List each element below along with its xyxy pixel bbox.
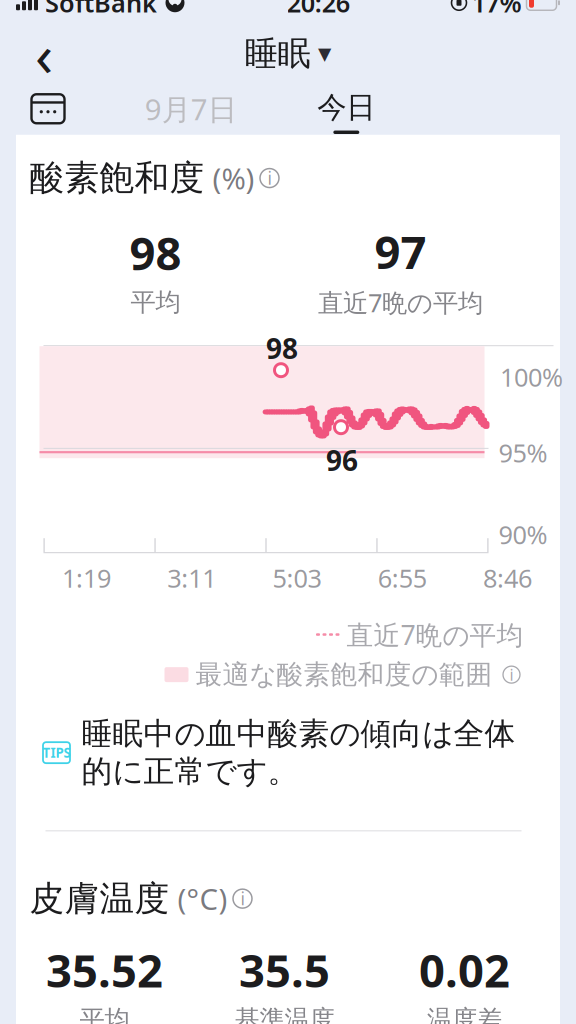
staticText: 20:26 bbox=[287, 0, 350, 19]
staticText: 35.5 bbox=[239, 940, 330, 1000]
staticText: 96 bbox=[326, 442, 358, 479]
staticText: 基準温度 bbox=[234, 1004, 334, 1024]
staticText: 皮膚温度 bbox=[29, 877, 169, 920]
staticText: 17% bbox=[471, 0, 521, 19]
staticText: 平均 bbox=[79, 1004, 129, 1024]
button[interactable]: Calendar bbox=[22, 87, 74, 131]
staticText: 98 bbox=[266, 330, 298, 367]
staticText: 35.52 bbox=[46, 940, 163, 1000]
button[interactable]: 睡眠 bbox=[236, 27, 339, 80]
staticText: 8:46 bbox=[483, 561, 532, 595]
staticText: ▼ bbox=[318, 44, 331, 64]
staticText: 100% bbox=[500, 360, 563, 394]
staticText: 1:19 bbox=[62, 561, 111, 595]
button[interactable]: About 皮膚温度 bbox=[227, 884, 257, 914]
staticText: ‹ bbox=[35, 15, 53, 93]
button[interactable]: About 酸素飽和度 bbox=[254, 163, 284, 193]
staticText: 0.02 bbox=[419, 940, 510, 1000]
staticText: 6:55 bbox=[378, 561, 427, 595]
button[interactable]: 9月7日 bbox=[135, 83, 247, 134]
staticText: (%) bbox=[204, 159, 254, 198]
staticText: 睡眠 bbox=[244, 33, 310, 74]
staticText: 95% bbox=[498, 436, 547, 469]
staticText: (°C) bbox=[169, 879, 227, 918]
staticText: 97 bbox=[374, 221, 426, 281]
staticText: SoftBank bbox=[45, 0, 157, 19]
staticText: 直近7晩の平均 bbox=[318, 285, 483, 319]
staticText: 98 bbox=[129, 223, 181, 283]
staticText: 直近7晩の平均 bbox=[346, 617, 523, 652]
staticText: 9月7日 bbox=[145, 89, 237, 128]
staticText: 最適な酸素飽和度の範囲 bbox=[195, 658, 492, 691]
staticText: 温度差 bbox=[427, 1004, 502, 1024]
staticText: 3:11 bbox=[167, 561, 216, 595]
staticText: 酸素飽和度 bbox=[29, 157, 204, 199]
staticText: 5:03 bbox=[272, 561, 321, 595]
staticText: i bbox=[267, 166, 271, 189]
staticText: 今日 bbox=[317, 89, 375, 125]
staticText: i bbox=[240, 887, 244, 910]
staticText: i bbox=[509, 664, 513, 685]
staticText: 90% bbox=[498, 517, 547, 551]
staticText: 睡眠中の血中酸素の傾向は全体的に正常です。 bbox=[81, 715, 515, 790]
staticText: 平均 bbox=[130, 287, 180, 318]
button[interactable]: About optimal range bbox=[499, 663, 523, 687]
staticText: TIPS bbox=[42, 744, 70, 761]
button[interactable]: Back bbox=[22, 32, 66, 76]
button[interactable]: 今日 bbox=[307, 83, 385, 134]
